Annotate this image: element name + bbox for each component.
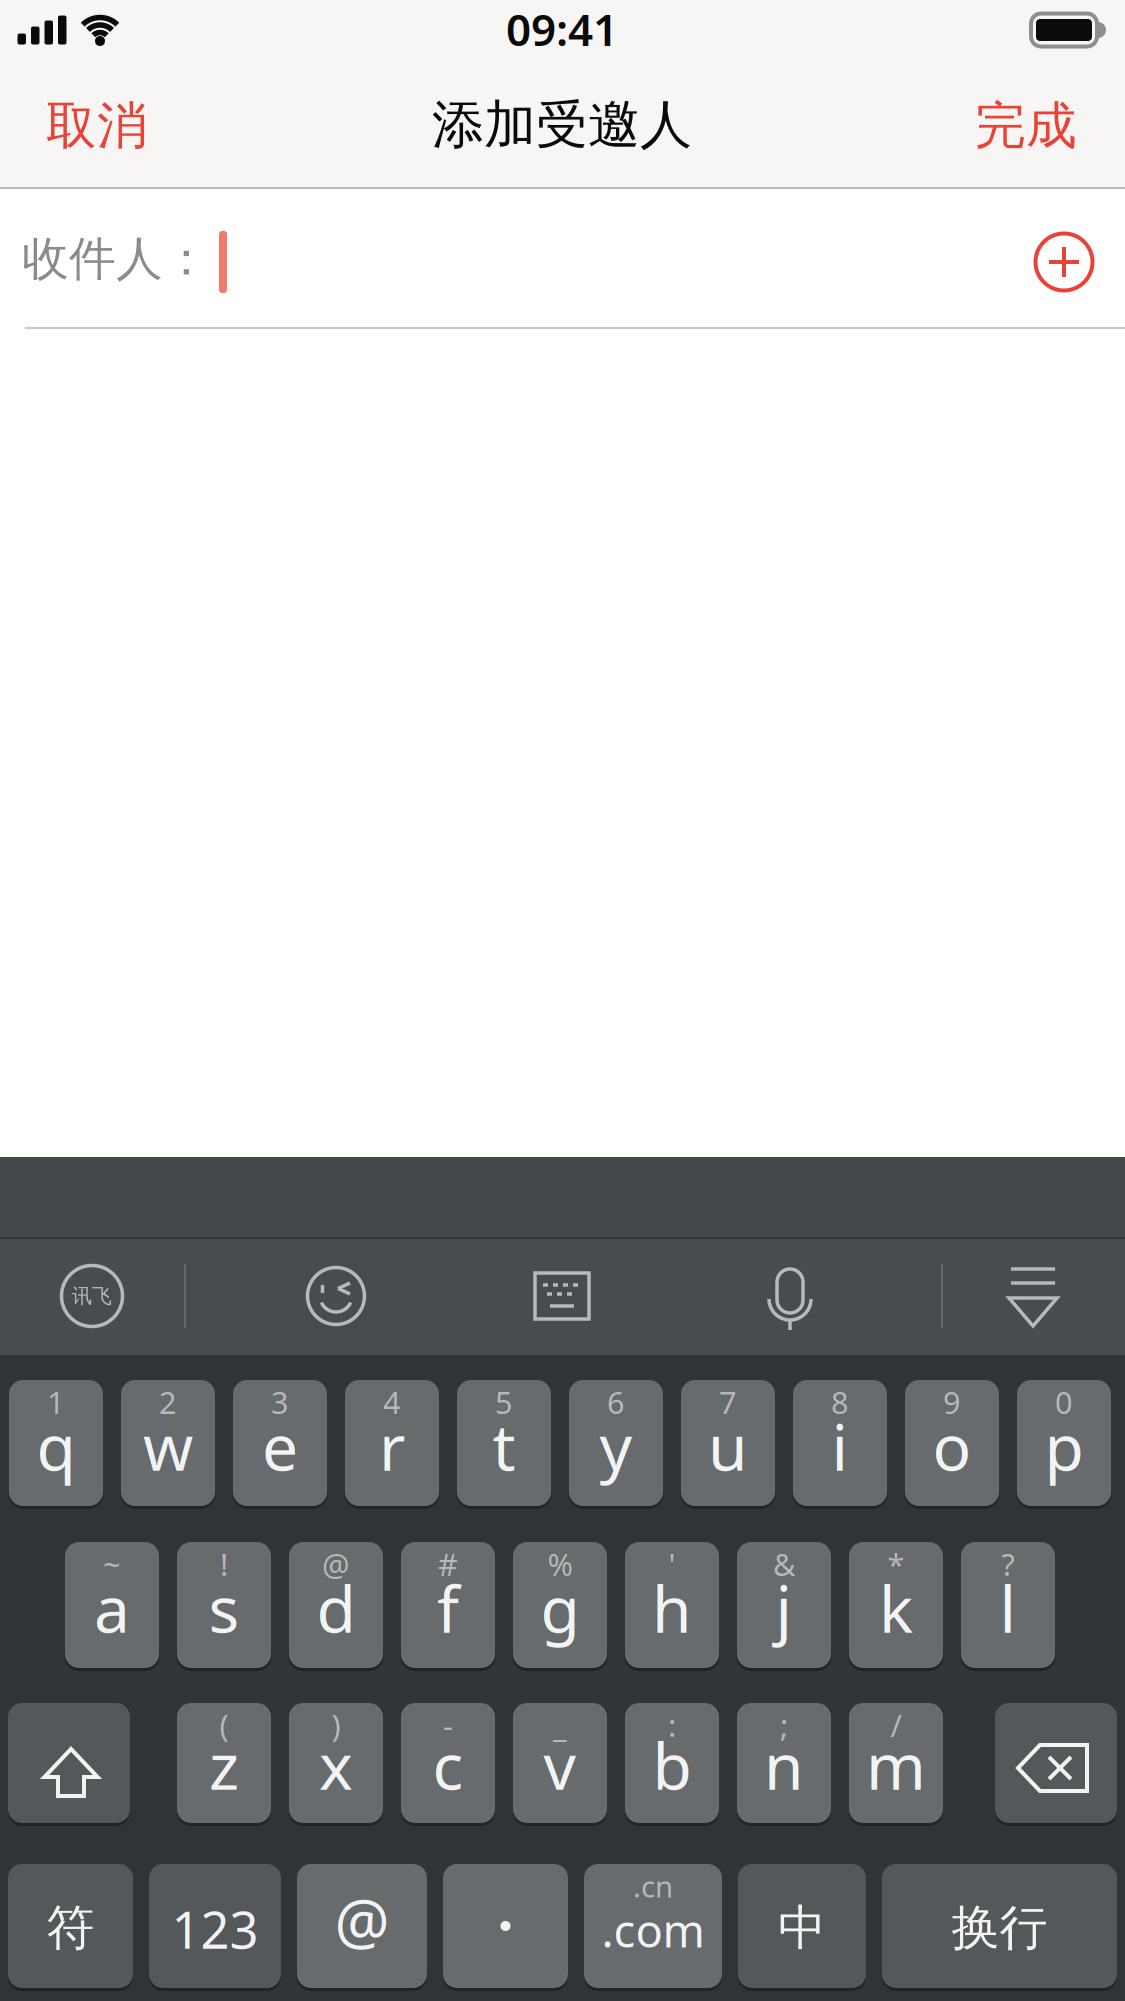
button[interactable]: 123 [149, 1864, 281, 1988]
button[interactable] [1024, 222, 1104, 302]
button[interactable]: @ [289, 1542, 383, 1668]
staticText: ~ [103, 1544, 121, 1584]
staticText: p [1044, 1403, 1083, 1488]
button[interactable]: 换行 [882, 1864, 1117, 1988]
staticText: _ [553, 1705, 567, 1745]
button[interactable]: 0 [1017, 1380, 1111, 1506]
staticText: * [887, 1544, 904, 1584]
staticText: r [379, 1403, 405, 1488]
staticText: q [36, 1403, 75, 1488]
staticText: y [599, 1403, 632, 1488]
button[interactable]: 中 [738, 1864, 866, 1988]
staticText: % [547, 1544, 572, 1584]
staticText: s [208, 1565, 239, 1650]
button[interactable]: 8 [793, 1380, 887, 1506]
staticText: - [443, 1705, 453, 1745]
button[interactable]: 4 [345, 1380, 439, 1506]
staticText: ( [219, 1705, 228, 1745]
button[interactable]: ~ [65, 1542, 159, 1668]
staticText: u [708, 1403, 748, 1488]
staticText: 09:41 [506, 0, 618, 58]
button[interactable] [8, 1703, 130, 1823]
button[interactable]: 符 [8, 1864, 133, 1988]
staticText: @ [322, 1544, 350, 1584]
staticText: 取消 [46, 95, 148, 157]
button[interactable]: : [625, 1703, 719, 1823]
staticText: e [262, 1403, 298, 1488]
button[interactable]: 讯飞 [37, 1241, 147, 1351]
button[interactable]: 1 [9, 1380, 103, 1506]
staticText: 123 [171, 1895, 258, 1963]
staticText: i [831, 1403, 848, 1488]
button[interactable]: ' [625, 1542, 719, 1668]
staticText: c [432, 1722, 463, 1807]
button[interactable]: ( [177, 1703, 271, 1823]
button[interactable]: 完成 [946, 81, 1106, 171]
staticText: w [143, 1403, 193, 1488]
button[interactable]: 9 [905, 1380, 999, 1506]
staticText: b [652, 1722, 691, 1807]
button[interactable]: ; [737, 1703, 831, 1823]
staticText: ; [780, 1705, 788, 1745]
staticText: d [316, 1565, 355, 1650]
staticText: 6 [607, 1382, 625, 1422]
button[interactable] [983, 1267, 1083, 1329]
button[interactable] [507, 1241, 617, 1351]
button[interactable]: 5 [457, 1380, 551, 1506]
staticText: j [775, 1565, 792, 1650]
button[interactable]: * [849, 1542, 943, 1668]
button[interactable]: ) [289, 1703, 383, 1823]
button[interactable]: & [737, 1542, 831, 1668]
button[interactable]: @ [297, 1864, 427, 1988]
button[interactable]: / [849, 1703, 943, 1823]
button[interactable] [735, 1267, 845, 1363]
staticText: f [437, 1565, 459, 1650]
staticText: .cn [633, 1866, 673, 1905]
staticText: ? [1001, 1544, 1014, 1584]
staticText: 9 [943, 1382, 961, 1422]
staticText: 添加受邀人 [432, 93, 692, 157]
staticText: t [492, 1403, 515, 1488]
staticText: 8 [831, 1382, 849, 1422]
button[interactable]: 收件人： [0, 192, 1000, 328]
button[interactable]: 7 [681, 1380, 775, 1506]
button[interactable] [443, 1864, 568, 1988]
button[interactable]: _ [513, 1703, 607, 1823]
staticText: a [94, 1565, 130, 1650]
staticText: ' [668, 1544, 675, 1584]
staticText: 2 [159, 1382, 177, 1422]
staticText: 3 [271, 1382, 289, 1422]
staticText: 4 [383, 1382, 401, 1422]
button[interactable] [995, 1703, 1117, 1823]
staticText: 完成 [975, 95, 1077, 157]
button[interactable]: 2 [121, 1380, 215, 1506]
button[interactable]: 3 [233, 1380, 327, 1506]
button[interactable]: 6 [569, 1380, 663, 1506]
staticText: @ [334, 1879, 389, 1961]
button[interactable] [281, 1241, 391, 1351]
button[interactable]: ! [177, 1542, 271, 1668]
staticText: 收件人： [22, 230, 210, 288]
staticText: z [209, 1722, 239, 1807]
staticText: # [438, 1544, 458, 1584]
staticText: v [543, 1722, 576, 1807]
button[interactable]: ? [961, 1542, 1055, 1668]
staticText: k [879, 1565, 913, 1650]
staticText: 换行 [951, 1898, 1047, 1957]
staticText: 7 [719, 1382, 737, 1422]
staticText: 符 [46, 1898, 94, 1957]
staticText: 中 [778, 1898, 826, 1957]
staticText: ) [331, 1705, 340, 1745]
staticText: & [773, 1544, 795, 1584]
button[interactable]: % [513, 1542, 607, 1668]
staticText: m [866, 1722, 926, 1807]
button[interactable]: 取消 [17, 81, 177, 171]
staticText: h [652, 1565, 692, 1650]
button[interactable]: .cn [584, 1864, 722, 1988]
staticText: / [890, 1705, 901, 1745]
staticText: 讯飞 [72, 1284, 112, 1308]
staticText: o [932, 1403, 971, 1488]
button[interactable]: - [401, 1703, 495, 1823]
button[interactable]: # [401, 1542, 495, 1668]
staticText: x [319, 1722, 353, 1807]
